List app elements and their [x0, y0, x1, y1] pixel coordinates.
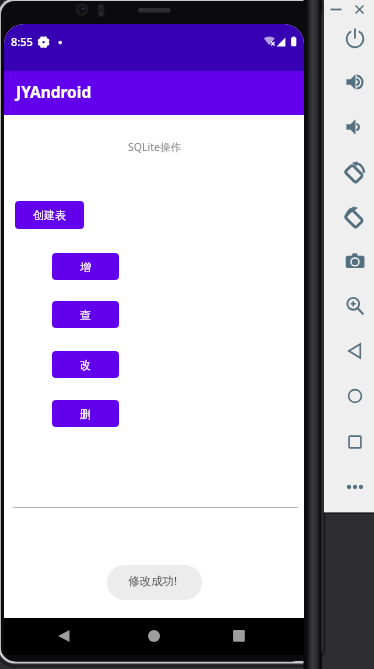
button[interactable]: 查 — [52, 301, 119, 328]
button[interactable]: Recent apps — [229, 629, 243, 643]
button[interactable]: Back — [344, 340, 366, 362]
button[interactable]: 增 — [52, 253, 119, 280]
button[interactable]: Power — [344, 27, 366, 49]
staticText: 查 — [80, 308, 91, 322]
button[interactable]: 删 — [52, 400, 119, 427]
button[interactable]: Volume down — [344, 116, 366, 138]
button[interactable]: 创建表 — [15, 201, 84, 229]
staticText: JYAndroid — [16, 81, 92, 102]
button[interactable]: Home — [344, 385, 366, 407]
button[interactable]: More — [344, 476, 366, 498]
button[interactable]: Take screenshot — [344, 250, 366, 272]
button[interactable]: 修改成功! — [107, 565, 202, 600]
staticText: 改 — [80, 358, 91, 372]
button[interactable]: Home — [144, 626, 164, 646]
button[interactable]: Rotate right — [344, 206, 366, 228]
button[interactable]: 改 — [52, 351, 119, 378]
button[interactable]: Back — [58, 629, 72, 643]
staticText: 增 — [80, 260, 91, 274]
staticText: 删 — [80, 407, 91, 421]
staticText: SQLite操作 — [128, 140, 181, 154]
button[interactable]: Zoom — [344, 295, 366, 317]
staticText: 8:55 — [11, 34, 33, 49]
button[interactable]: Overview — [344, 431, 366, 453]
staticText: 创建表 — [33, 208, 66, 222]
button[interactable]: Rotate left — [344, 161, 366, 183]
button[interactable]: Volume up — [344, 71, 366, 93]
staticText: 修改成功! — [128, 573, 178, 589]
